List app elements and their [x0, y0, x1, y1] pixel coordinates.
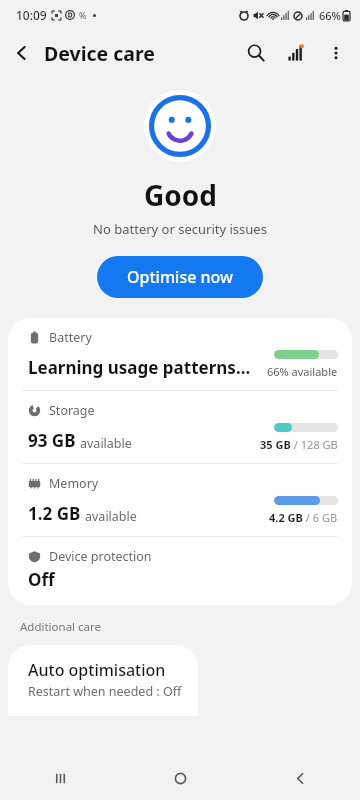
staticText: available: [85, 508, 137, 525]
staticText: available: [80, 435, 132, 452]
button[interactable]: Memory: [8, 464, 352, 536]
staticText: 1.2 GB: [28, 502, 81, 525]
staticText: Memory: [49, 475, 99, 492]
staticText: Optimise now: [127, 266, 233, 288]
button[interactable]: Optimise now: [97, 256, 263, 298]
button[interactable]: Device protection: [8, 537, 352, 605]
button[interactable]: Back: [240, 756, 360, 800]
staticText: No battery or security issues: [93, 220, 267, 238]
staticText: Learning usage patterns...: [28, 356, 251, 379]
button[interactable]: More options: [316, 33, 356, 73]
staticText: Additional care: [20, 619, 102, 635]
staticText: Device care: [44, 40, 155, 67]
staticText: %: [79, 9, 87, 21]
staticText: Battery: [49, 329, 92, 346]
staticText: Device protection: [49, 548, 152, 565]
staticText: Storage: [49, 402, 95, 419]
staticText: / 128 GB: [291, 437, 338, 452]
staticText: 93 GB: [28, 429, 76, 452]
staticText: 66%: [319, 8, 341, 23]
button[interactable]: Auto optimisation: [8, 645, 198, 716]
staticText: Restart when needed : Off: [28, 683, 182, 700]
button[interactable]: Search: [236, 33, 276, 73]
staticText: / 6 GB: [303, 510, 338, 525]
staticText: 35 GB: [260, 437, 291, 452]
staticText: 4.2 GB: [269, 510, 303, 525]
button[interactable]: Storage: [8, 391, 352, 463]
staticText: Auto optimisation: [28, 659, 166, 681]
button[interactable]: Home: [120, 756, 240, 800]
staticText: Good: [144, 176, 217, 214]
staticText: Off: [28, 568, 55, 591]
button[interactable]: Battery: [8, 318, 352, 390]
button[interactable]: Back: [0, 31, 44, 75]
button[interactable]: Diagnostics: [276, 33, 316, 73]
staticText: 66% available: [267, 364, 338, 379]
staticText: 10:09: [16, 7, 47, 23]
button[interactable]: Recents: [0, 756, 120, 800]
